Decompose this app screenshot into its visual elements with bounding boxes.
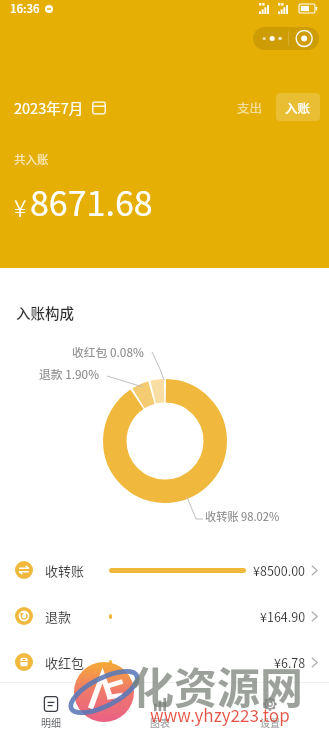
button[interactable]: 退款 [0,593,329,639]
staticText: 收转账 [45,561,100,580]
staticText: 支出 [237,98,263,116]
staticText: 收红包 0.08% [72,343,144,360]
staticText: 收红包 [45,653,100,672]
button[interactable]: 收转账 [0,547,329,593]
staticText: 收转账 98.02% [205,508,280,524]
staticText: 8671.68 [30,177,153,226]
button[interactable]: 支出 [228,93,272,121]
button[interactable]: 明细 [0,688,105,729]
staticText: ¥8500.00 [253,561,306,579]
button[interactable]: 2023年7月 [14,93,106,122]
staticText: ¥ [14,190,27,223]
button[interactable]: 图表 [105,688,215,729]
staticText: 图表 [150,715,170,729]
button[interactable]: 设置 [215,688,325,729]
staticText: ¥164.90 [260,607,306,625]
button[interactable]: 入账 [276,93,320,121]
staticText: 共入账 [14,151,49,168]
staticText: ¥6.78 [274,653,306,671]
staticText: 设置 [260,715,280,729]
staticText: 退款 1.90% [39,365,100,382]
staticText: 明细 [41,715,61,729]
button[interactable]: 收红包 [0,639,329,685]
button[interactable]: Menu [253,27,319,50]
staticText: 入账构成 [16,302,74,323]
staticText: www.yhzy223.top [150,702,290,727]
staticText: 化资源网 [131,654,303,716]
staticText: 16:36 [10,0,40,17]
staticText: 2023年7月 [14,97,84,118]
staticText: 入账 [285,98,311,116]
staticText: 退款 [45,607,100,626]
